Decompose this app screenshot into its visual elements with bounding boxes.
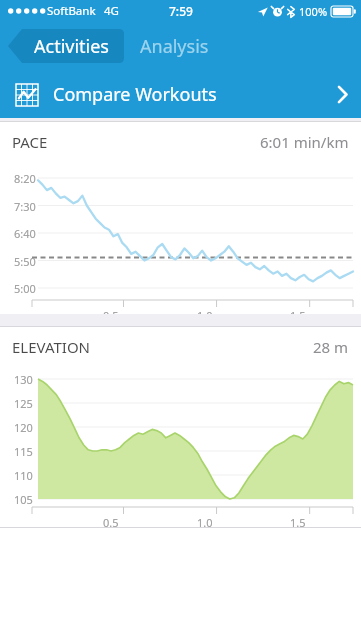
staticText: Activities — [34, 34, 109, 59]
staticText: 6:40 — [14, 226, 36, 241]
staticText: Compare Workouts — [53, 82, 217, 107]
staticText: 5:50 — [14, 254, 36, 269]
staticText: 4G — [104, 3, 119, 19]
staticText: ELEVATION — [12, 337, 91, 357]
staticText: 6:01 min/km — [260, 132, 349, 152]
staticText: 1.0 — [197, 515, 213, 530]
staticText: PACE — [12, 132, 48, 152]
staticText: 7:30 — [14, 199, 36, 214]
other: Open compare workouts — [337, 85, 348, 104]
button[interactable]: Analysis — [140, 29, 228, 63]
button[interactable]: Activities — [8, 29, 124, 63]
staticText: 110 — [14, 468, 33, 483]
staticText: 105 — [14, 492, 33, 507]
staticText: 100% — [299, 4, 328, 19]
staticText: 1.0 — [197, 308, 213, 323]
staticText: 125 — [14, 396, 33, 411]
staticText: 120 — [14, 420, 33, 435]
staticText: Analysis — [140, 34, 209, 59]
staticText: SoftBank — [47, 3, 96, 19]
staticText: 28 m — [313, 337, 349, 357]
staticText: 130 — [14, 372, 33, 387]
staticText: 1.5 — [290, 515, 306, 530]
staticText: 5:00 — [14, 281, 36, 296]
staticText: 8:20 — [14, 171, 36, 186]
staticText: 115 — [14, 444, 33, 459]
staticText: 0.5 — [103, 515, 119, 530]
staticText: 7:59 — [169, 3, 193, 19]
button[interactable]: Compare Workouts — [0, 70, 361, 118]
staticText: 1.5 — [290, 308, 306, 323]
staticText: 0.5 — [103, 308, 119, 323]
